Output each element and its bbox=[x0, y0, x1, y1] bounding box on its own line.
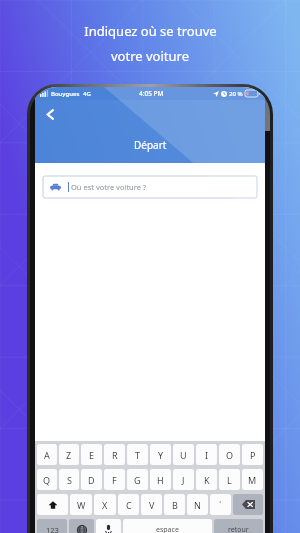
staticText: G bbox=[134, 474, 141, 486]
button[interactable]: C bbox=[118, 494, 139, 515]
button[interactable]: Z bbox=[59, 444, 79, 465]
staticText: 4:05 PM bbox=[139, 89, 164, 98]
button[interactable]: U bbox=[173, 444, 194, 465]
button[interactable]: T bbox=[127, 444, 148, 465]
button[interactable]: Effacer bbox=[233, 494, 263, 515]
button[interactable]: Q bbox=[37, 469, 57, 490]
staticText: A bbox=[44, 449, 50, 461]
button[interactable]: S bbox=[59, 469, 79, 490]
staticText: W bbox=[77, 499, 86, 511]
staticText: X bbox=[102, 499, 108, 511]
button[interactable]: W bbox=[70, 494, 92, 515]
staticText: Départ bbox=[134, 138, 167, 152]
button[interactable]: Dictée vocale bbox=[96, 519, 121, 533]
button[interactable]: Y bbox=[150, 444, 171, 465]
button[interactable]: L bbox=[219, 469, 240, 490]
staticText: Y bbox=[158, 449, 164, 461]
button[interactable]: J bbox=[173, 469, 194, 490]
staticText: espace bbox=[156, 525, 179, 533]
staticText: T bbox=[135, 449, 141, 461]
button[interactable]: B bbox=[164, 494, 185, 515]
staticText: Indiquez où se trouve bbox=[84, 22, 217, 40]
button[interactable]: M bbox=[242, 469, 263, 490]
button[interactable]: Retour bbox=[39, 103, 61, 125]
button[interactable]: V bbox=[141, 494, 162, 515]
button[interactable]: Majuscule bbox=[37, 494, 68, 515]
staticText: J bbox=[182, 474, 185, 486]
staticText: E bbox=[89, 449, 95, 461]
staticText: O bbox=[226, 449, 234, 461]
button[interactable]: F bbox=[104, 469, 125, 490]
button[interactable]: Changer de clavier bbox=[69, 519, 94, 533]
button[interactable]: H bbox=[150, 469, 171, 490]
button[interactable]: espace bbox=[123, 519, 212, 533]
staticText: S bbox=[67, 474, 72, 486]
staticText: M bbox=[248, 474, 257, 486]
staticText: Q bbox=[43, 474, 51, 486]
button[interactable]: G bbox=[127, 469, 148, 490]
button[interactable]: R bbox=[104, 444, 125, 465]
staticText: L bbox=[227, 474, 232, 486]
staticText: votre voiture bbox=[111, 47, 189, 65]
button[interactable]: K bbox=[196, 469, 217, 490]
button[interactable]: D bbox=[81, 469, 102, 490]
staticText: 4G bbox=[83, 90, 91, 98]
button[interactable]: ´ bbox=[210, 494, 231, 515]
button[interactable]: P bbox=[242, 444, 263, 465]
button[interactable]: N bbox=[187, 494, 208, 515]
button[interactable]: retour bbox=[214, 519, 263, 533]
staticText: V bbox=[149, 499, 155, 511]
button[interactable]: E bbox=[81, 444, 102, 465]
button[interactable]: A bbox=[37, 444, 57, 465]
staticText: P bbox=[250, 449, 256, 461]
button[interactable]: 123 bbox=[37, 519, 67, 533]
staticText: retour bbox=[228, 525, 249, 533]
staticText: 123 bbox=[46, 525, 59, 533]
button[interactable]: O bbox=[219, 444, 240, 465]
staticText: I bbox=[205, 449, 209, 461]
button[interactable]: I bbox=[196, 444, 217, 465]
staticText: K bbox=[204, 474, 210, 486]
button[interactable]: Où est votre voiture ? bbox=[43, 176, 257, 198]
staticText: F bbox=[112, 474, 117, 486]
staticText: Z bbox=[66, 449, 72, 461]
staticText: N bbox=[194, 499, 201, 511]
staticText: R bbox=[112, 449, 118, 461]
staticText: D bbox=[88, 474, 95, 486]
staticText: Où est votre voiture ? bbox=[71, 182, 147, 192]
staticText: B bbox=[172, 499, 178, 511]
staticText: Bouygues bbox=[51, 90, 80, 98]
staticText: C bbox=[126, 499, 132, 511]
staticText: ´ bbox=[219, 499, 222, 511]
button[interactable]: X bbox=[94, 494, 116, 515]
staticText: H bbox=[157, 474, 164, 486]
staticText: U bbox=[180, 449, 187, 461]
staticText: 20 % bbox=[229, 90, 243, 98]
